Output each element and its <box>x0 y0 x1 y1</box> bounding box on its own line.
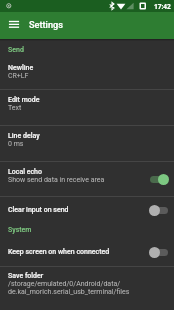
button[interactable]: Local echo <box>0 162 174 196</box>
button[interactable]: Open navigation drawer <box>3 15 25 37</box>
staticText: System <box>8 226 32 234</box>
button[interactable]: Line delay <box>0 126 174 161</box>
button[interactable]: Newline <box>0 58 174 89</box>
staticText: Settings <box>29 19 63 30</box>
staticText: Save folder <box>8 272 44 280</box>
staticText: CR+LF <box>8 72 29 80</box>
button[interactable]: Clear input on send <box>0 197 174 222</box>
staticText: 0 ms <box>8 140 24 148</box>
staticText: Text <box>8 104 22 112</box>
button[interactable]: Edit mode <box>0 90 174 125</box>
staticText: /storage/emulated/0/Android/data/ de.kai… <box>8 280 130 296</box>
staticText: 17:42 <box>154 2 171 11</box>
staticText: Local echo <box>8 168 42 176</box>
button[interactable]: Save folder <box>0 267 174 310</box>
staticText: Keep screen on when connected <box>8 248 149 256</box>
staticText: Show send data in receive area <box>8 176 105 184</box>
staticText: Newline <box>8 64 34 72</box>
staticText: Edit mode <box>8 96 40 104</box>
button[interactable]: Keep screen on when connected <box>0 238 174 266</box>
staticText: Line delay <box>8 132 40 140</box>
staticText: Clear input on send <box>8 206 149 214</box>
staticText: Send <box>8 46 24 54</box>
